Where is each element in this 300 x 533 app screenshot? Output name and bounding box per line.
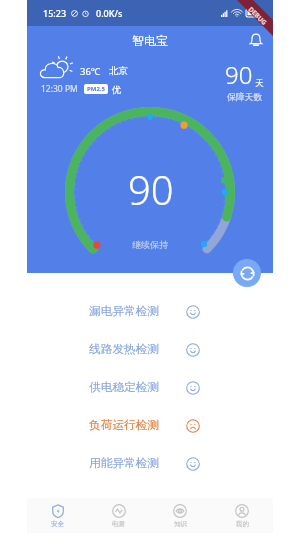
staticText: 0.0K/s xyxy=(96,7,123,19)
staticText: 北京 xyxy=(109,65,128,77)
button[interactable]: 安全 xyxy=(27,498,88,533)
staticText: 供电稳定检测 xyxy=(89,380,160,395)
staticText: 优 xyxy=(112,84,121,95)
staticText: 90 xyxy=(128,162,174,216)
staticText: 我的 xyxy=(236,520,249,528)
button[interactable]: 电量 xyxy=(88,498,149,533)
staticText: 继续保持 xyxy=(132,239,168,250)
button[interactable]: 供电稳定检测 xyxy=(27,368,273,406)
staticText: 36℃ xyxy=(80,65,101,78)
button[interactable]: 线路发热检测 xyxy=(27,330,273,368)
staticText: 天 xyxy=(255,78,264,89)
staticText: 保障天数 xyxy=(227,92,263,103)
staticText: 安全 xyxy=(51,520,64,528)
staticText: 电量 xyxy=(112,520,125,528)
staticText: 漏电异常检测 xyxy=(89,304,160,319)
button[interactable]: 用能异常检测 xyxy=(27,444,273,482)
staticText: 知识 xyxy=(174,520,187,528)
button[interactable]: 负荷运行检测 xyxy=(27,406,273,444)
staticText: PM2.5 xyxy=(87,85,105,93)
staticText: 12:30 PM xyxy=(41,83,78,95)
button[interactable]: 知识 xyxy=(149,498,211,533)
button[interactable]: 漏电异常检测 xyxy=(27,292,273,330)
button[interactable]: 我的 xyxy=(211,498,273,533)
staticText: 智电宝 xyxy=(132,33,168,48)
staticText: 负荷运行检测 xyxy=(89,418,160,433)
button[interactable]: Notifications xyxy=(247,31,265,49)
button[interactable]: Refresh xyxy=(233,259,261,287)
staticText: 线路发热检测 xyxy=(89,342,160,357)
staticText: 15:23 xyxy=(43,7,67,19)
staticText: 用能异常检测 xyxy=(89,456,160,471)
staticText: 90 xyxy=(225,58,253,91)
